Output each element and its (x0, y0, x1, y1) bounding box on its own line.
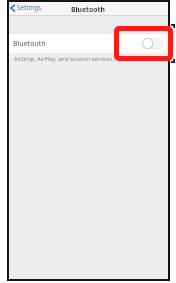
staticText: Bluetooth (71, 5, 105, 14)
button[interactable]: Bluetooth toggle (142, 38, 163, 49)
button[interactable]: Bluetooth (7, 34, 170, 53)
staticText: Settings (17, 3, 42, 12)
staticText: Bluetooth (13, 39, 46, 49)
button[interactable]: Settings (10, 3, 42, 12)
staticText: AirDrop, AirPlay, and location services. (14, 55, 114, 63)
